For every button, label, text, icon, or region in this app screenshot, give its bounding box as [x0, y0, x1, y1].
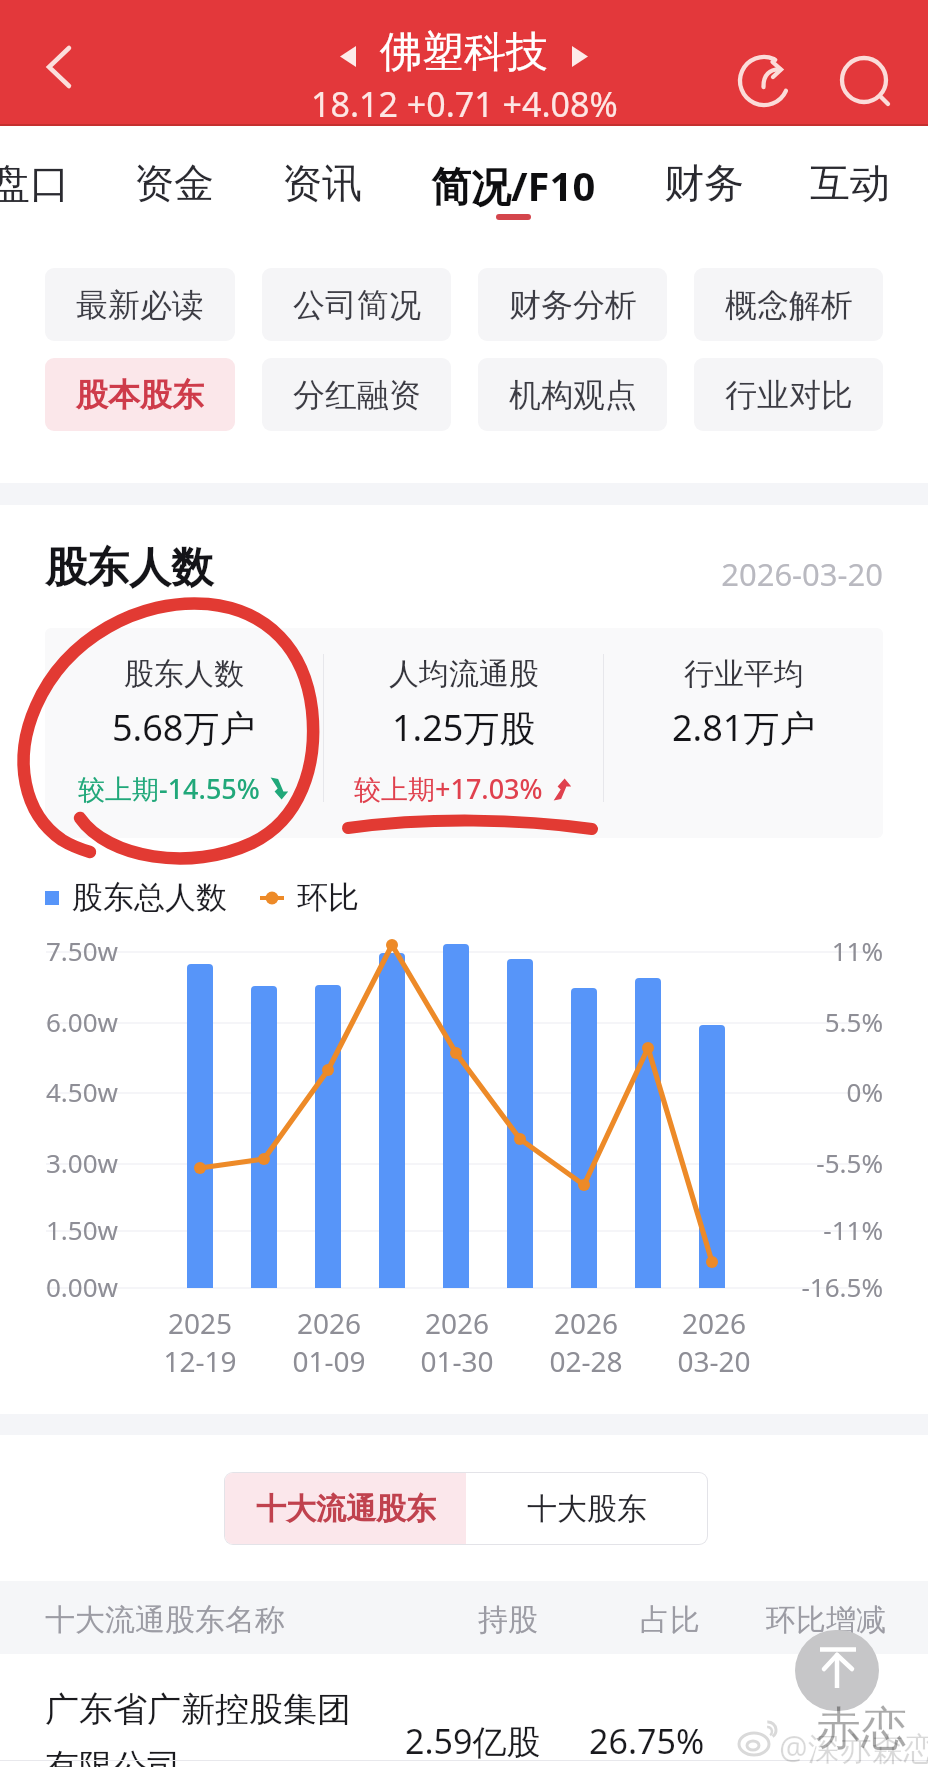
staticText: -11% [763, 1212, 883, 1247]
staticText: 1.25万股 [392, 703, 536, 752]
button[interactable]: 人均流通股 [324, 628, 603, 838]
staticText: 最新必读 [76, 285, 204, 325]
button[interactable]: 十大流通股东 [225, 1473, 466, 1544]
staticText: 2.81万户 [672, 703, 816, 752]
staticText: 占比 [640, 1601, 700, 1639]
button[interactable]: 公司简况 [262, 268, 451, 341]
staticText: 2026 01-09 [249, 1304, 409, 1380]
staticText: 持股 [478, 1601, 538, 1639]
staticText: 6.00w [46, 1004, 166, 1039]
button[interactable]: 行业平均 [604, 628, 883, 838]
staticText: 简况/F10 [431, 158, 596, 213]
staticText: -16.5% [763, 1269, 883, 1304]
staticText: 环比增减 [766, 1601, 886, 1639]
staticText: 盘口 [0, 158, 70, 208]
button[interactable]: 盘口 [0, 158, 70, 209]
button[interactable]: 资金 [134, 158, 214, 209]
staticText: 7.50w [46, 933, 166, 968]
button[interactable]: Back [1, 4, 117, 130]
staticText: 十大股东 [527, 1490, 647, 1528]
staticText: 5.68万户 [112, 703, 256, 752]
button[interactable]: Scroll to top [795, 1630, 879, 1711]
staticText: 4.50w [46, 1074, 166, 1109]
staticText: 十大流通股东名称 [45, 1601, 285, 1639]
staticText: -5.5% [763, 1145, 883, 1180]
staticText: 人均流通股 [389, 655, 539, 693]
staticText: 股东总人数 [72, 878, 227, 917]
staticText: 2.59亿股 [405, 1718, 541, 1764]
staticText: 较上期-14.55% [78, 770, 260, 807]
staticText: 3.00w [46, 1145, 166, 1180]
staticText: 环比 [297, 878, 359, 917]
button[interactable]: 股本股东 [45, 358, 235, 431]
button[interactable]: 最新必读 [45, 268, 235, 341]
staticText: 股东人数 [124, 655, 244, 693]
staticText: 2026 03-20 [634, 1304, 794, 1380]
staticText: 0.00w [46, 1269, 166, 1304]
staticText: 1.50w [46, 1212, 166, 1247]
button[interactable]: 财务 [664, 158, 744, 209]
staticText: @深亦森恋雪 [779, 1726, 928, 1767]
staticText: 5.5% [763, 1004, 883, 1039]
staticText: 行业平均 [684, 655, 804, 693]
staticText: 11% [763, 933, 883, 968]
staticText: 分红融资 [293, 375, 421, 415]
staticText: 概念解析 [725, 285, 853, 325]
staticText: 2026 02-28 [506, 1304, 666, 1380]
staticText: 26.75% [589, 1718, 705, 1764]
button[interactable]: 财务分析 [478, 268, 667, 341]
staticText: 广东省广新控股集团 有限公司 [45, 1688, 351, 1767]
button[interactable]: 机构观点 [478, 358, 667, 431]
staticText: 18.12 +0.71 +4.08% [311, 81, 618, 127]
staticText: 机构观点 [509, 375, 637, 415]
staticText: 资金 [134, 158, 214, 208]
button[interactable]: 分红融资 [262, 358, 451, 431]
staticText: 0% [763, 1074, 883, 1109]
staticText: 股东人数 [45, 542, 213, 595]
staticText: 资讯 [282, 158, 362, 208]
staticText: 佛塑科技 [380, 26, 548, 79]
staticText: 财务分析 [509, 285, 637, 325]
staticText: 互动 [810, 158, 890, 208]
button[interactable]: 资讯 [282, 158, 362, 209]
button[interactable]: 互动 [810, 158, 890, 209]
button[interactable]: 十大股东 [466, 1473, 707, 1544]
staticText: 2026 01-30 [377, 1304, 537, 1380]
staticText: 较上期+17.03% [354, 770, 543, 807]
button[interactable]: Refresh [716, 33, 812, 129]
button[interactable]: 行业对比 [694, 358, 883, 431]
staticText: 十大流通股东 [256, 1490, 436, 1528]
staticText: 2026-03-20 [0, 553, 883, 595]
staticText: 行业对比 [725, 375, 853, 415]
staticText: 股本股东 [76, 375, 204, 415]
button[interactable]: 概念解析 [694, 268, 883, 341]
staticText: 财务 [664, 158, 744, 208]
staticText: 赤恋 [815, 1700, 907, 1758]
staticText: 2025 12-19 [120, 1304, 280, 1380]
staticText: 公司简况 [293, 285, 421, 325]
button[interactable]: Search [816, 32, 912, 128]
button[interactable]: 股东人数 [45, 628, 323, 838]
button[interactable]: 简况/F10 [431, 158, 596, 220]
